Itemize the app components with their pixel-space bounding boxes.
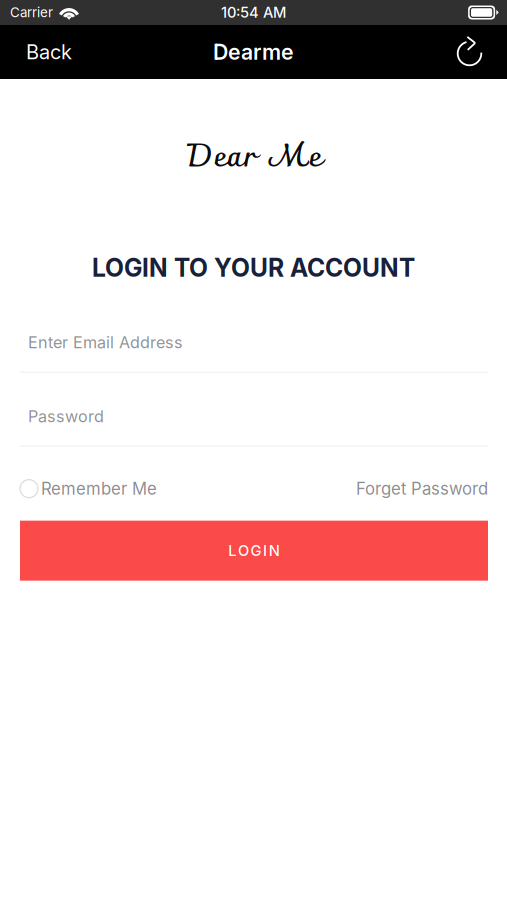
- staticText: Dear Me: [186, 128, 321, 189]
- staticText: Back: [26, 40, 72, 64]
- staticText: Enter Email Address: [28, 333, 183, 352]
- staticText: Password: [28, 407, 104, 426]
- staticText: Dearme: [213, 39, 294, 65]
- button[interactable]: Remember Me: [20, 478, 157, 500]
- staticText: Carrier: [10, 4, 53, 20]
- staticText: LOGIN: [228, 542, 280, 559]
- button[interactable]: Back: [0, 25, 92, 79]
- staticText: LOGIN TO YOUR ACCOUNT: [92, 253, 415, 283]
- staticText: 10:54 AM: [221, 4, 286, 21]
- staticText: Forget Password: [356, 479, 488, 499]
- button[interactable]: Forget Password: [356, 478, 488, 500]
- staticText: Remember Me: [41, 479, 157, 499]
- button[interactable]: LOGIN: [20, 521, 488, 581]
- button[interactable]: Refresh: [437, 25, 507, 79]
